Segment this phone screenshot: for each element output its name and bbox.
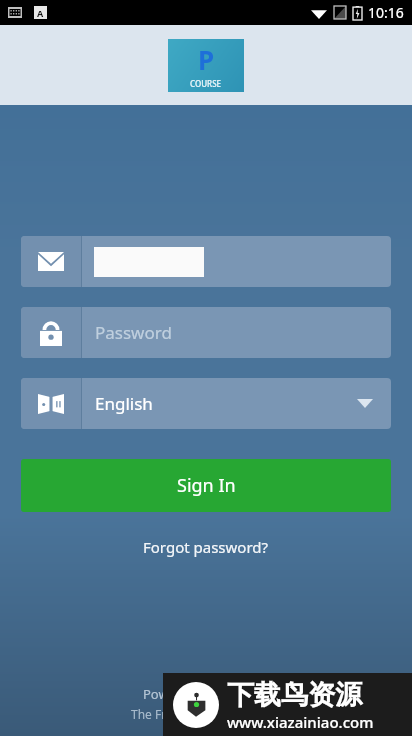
staticText: Forgot password? <box>143 537 269 557</box>
button[interactable]: Forgot password? <box>0 537 412 557</box>
staticText: Password <box>95 321 172 344</box>
staticText: A <box>37 7 44 19</box>
staticText: COURSE <box>190 78 222 89</box>
staticText: Sign In <box>177 473 236 498</box>
staticText: P <box>198 42 215 77</box>
button[interactable]: English <box>21 378 391 429</box>
button[interactable] <box>21 236 391 287</box>
staticText: www.xiazainiao.com <box>227 712 374 732</box>
staticText: The Free Cloud-Based LMS <box>131 706 281 722</box>
button[interactable]: Sign In <box>21 459 391 512</box>
other: Select language <box>357 399 373 408</box>
staticText: English <box>95 392 153 415</box>
staticText: 下载鸟资源 <box>227 678 362 712</box>
staticText: 10:16 <box>368 3 404 22</box>
button[interactable]: Password <box>21 307 391 358</box>
staticText: Powered by ProProfs <box>143 685 270 703</box>
